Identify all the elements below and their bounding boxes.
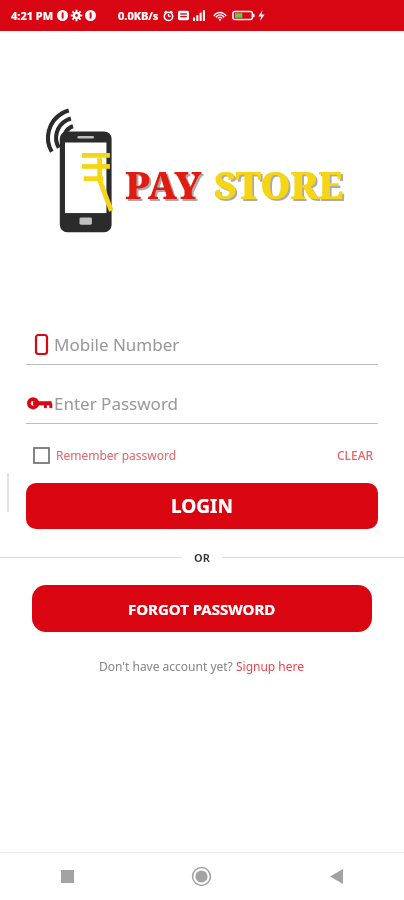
- button[interactable]: Remember password: [26, 447, 177, 463]
- staticText: Don't have account yet? Signup here: [99, 658, 305, 674]
- staticText: PAY: [127, 161, 204, 211]
- staticText: Mobile Number: [54, 333, 180, 356]
- button[interactable]: FORGOT PASSWORD: [32, 585, 372, 632]
- staticText: OR: [194, 550, 210, 565]
- button[interactable]: Recent apps: [0, 853, 134, 900]
- staticText: Remember password: [56, 447, 177, 463]
- staticText: FORGOT PASSWORD: [128, 599, 276, 619]
- button[interactable]: LOGIN: [26, 483, 378, 529]
- staticText: Enter Password: [54, 392, 179, 415]
- staticText: LOGIN: [171, 493, 233, 519]
- staticText: STORE: [216, 161, 346, 211]
- button[interactable]: CLEAR: [333, 443, 378, 467]
- staticText: STORE: [214, 159, 344, 209]
- button[interactable]: Home: [134, 853, 269, 900]
- staticText: 4:21 PM: [11, 8, 54, 23]
- staticText: 0.0KB/s: [118, 8, 159, 23]
- staticText: CLEAR: [337, 447, 374, 463]
- button[interactable]: Don't have account yet? Signup here: [95, 654, 309, 678]
- button[interactable]: Back: [269, 853, 404, 900]
- staticText: PAY: [125, 159, 202, 209]
